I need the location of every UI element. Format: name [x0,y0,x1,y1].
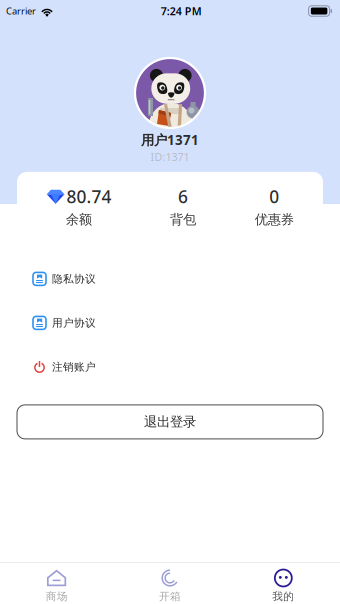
staticText: 退出登录 [144,414,196,430]
button[interactable]: 用户协议 [17,306,323,340]
button[interactable]: 开箱 [113,569,227,603]
staticText: 背包 [170,211,196,228]
button[interactable]: 退出登录 [17,405,323,439]
button[interactable]: 商场 [0,569,113,603]
staticText: 6 [178,185,188,208]
staticText: Carrier [6,5,36,17]
staticText: 0 [269,185,279,208]
staticText: 80.74 [66,185,111,208]
button[interactable]: 隐私协议 [17,262,323,296]
staticText: 注销账户 [52,360,96,373]
staticText: 用户协议 [52,316,96,329]
staticText: 7:24 PM [161,4,202,18]
staticText: 余额 [66,211,92,228]
staticText: 我的 [272,590,294,603]
staticText: 用户1371 [141,131,199,149]
staticText: 隐私协议 [52,272,96,285]
button[interactable]: 我的 [227,569,340,603]
button[interactable]: 注销账户 [17,350,323,384]
staticText: 开箱 [159,590,181,603]
staticText: 优惠券 [255,211,294,228]
staticText: ID:1371 [150,150,189,164]
staticText: 商场 [46,590,68,603]
